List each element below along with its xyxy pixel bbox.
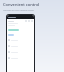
staticText: Convenient control (3, 2, 40, 7)
staticText: Manage all your devices easily (3, 9, 34, 12)
